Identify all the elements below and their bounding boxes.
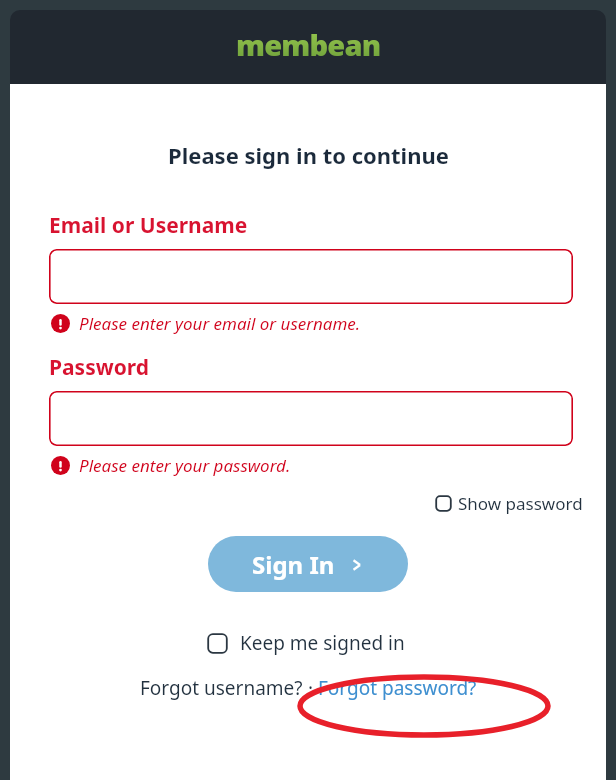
staticText: Please enter your email or username. — [79, 312, 361, 335]
button[interactable]: Forgot password? — [318, 675, 477, 701]
button[interactable] — [49, 249, 573, 304]
staticText: membean — [236, 25, 381, 64]
staticText: Forgot password? — [318, 675, 477, 701]
staticText: Password — [49, 353, 150, 382]
button[interactable]: Keep me signed in — [207, 630, 405, 656]
staticText: Keep me signed in — [240, 630, 405, 656]
staticText: Forgot username? — [140, 675, 303, 701]
staticText: Email or Username — [49, 211, 248, 240]
button[interactable]: Membean home — [236, 25, 381, 64]
staticText: Please enter your password. — [79, 454, 291, 477]
staticText: Please sign in to continue — [168, 140, 449, 170]
staticText: · — [303, 675, 318, 701]
button[interactable]: Show password — [435, 492, 583, 515]
button[interactable] — [49, 391, 573, 446]
staticText: Sign In — [252, 548, 335, 581]
button[interactable]: Sign In — [208, 536, 408, 592]
staticText: Show password — [458, 492, 583, 515]
button[interactable]: Forgot username? — [140, 675, 303, 701]
